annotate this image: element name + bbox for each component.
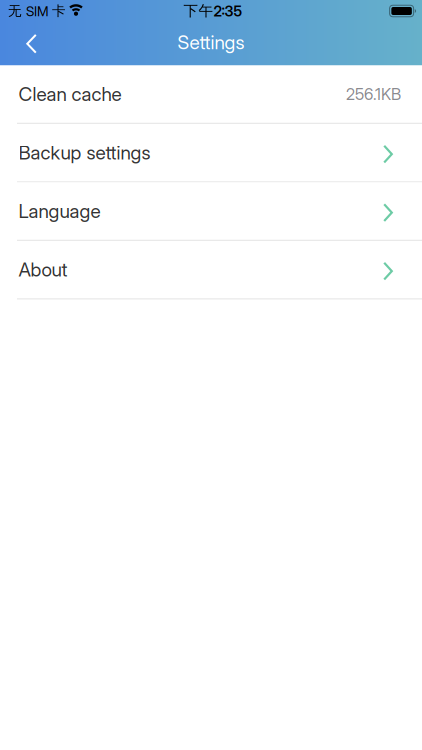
button[interactable]: About	[0, 241, 422, 298]
staticText: 256.1KB	[346, 84, 401, 104]
staticText: 下午2:35	[183, 2, 242, 20]
staticText: Settings	[177, 31, 244, 54]
button[interactable]: Backup settings	[0, 124, 422, 181]
staticText: About	[18, 258, 67, 281]
staticText: Backup settings	[18, 141, 150, 164]
button[interactable]: Language	[0, 182, 422, 240]
staticText: 无 SIM 卡	[8, 2, 66, 19]
button[interactable]: Back	[0, 22, 57, 65]
staticText: Clean cache	[18, 83, 121, 106]
button[interactable]: Clean cache	[0, 65, 422, 123]
staticText: Language	[18, 200, 100, 223]
